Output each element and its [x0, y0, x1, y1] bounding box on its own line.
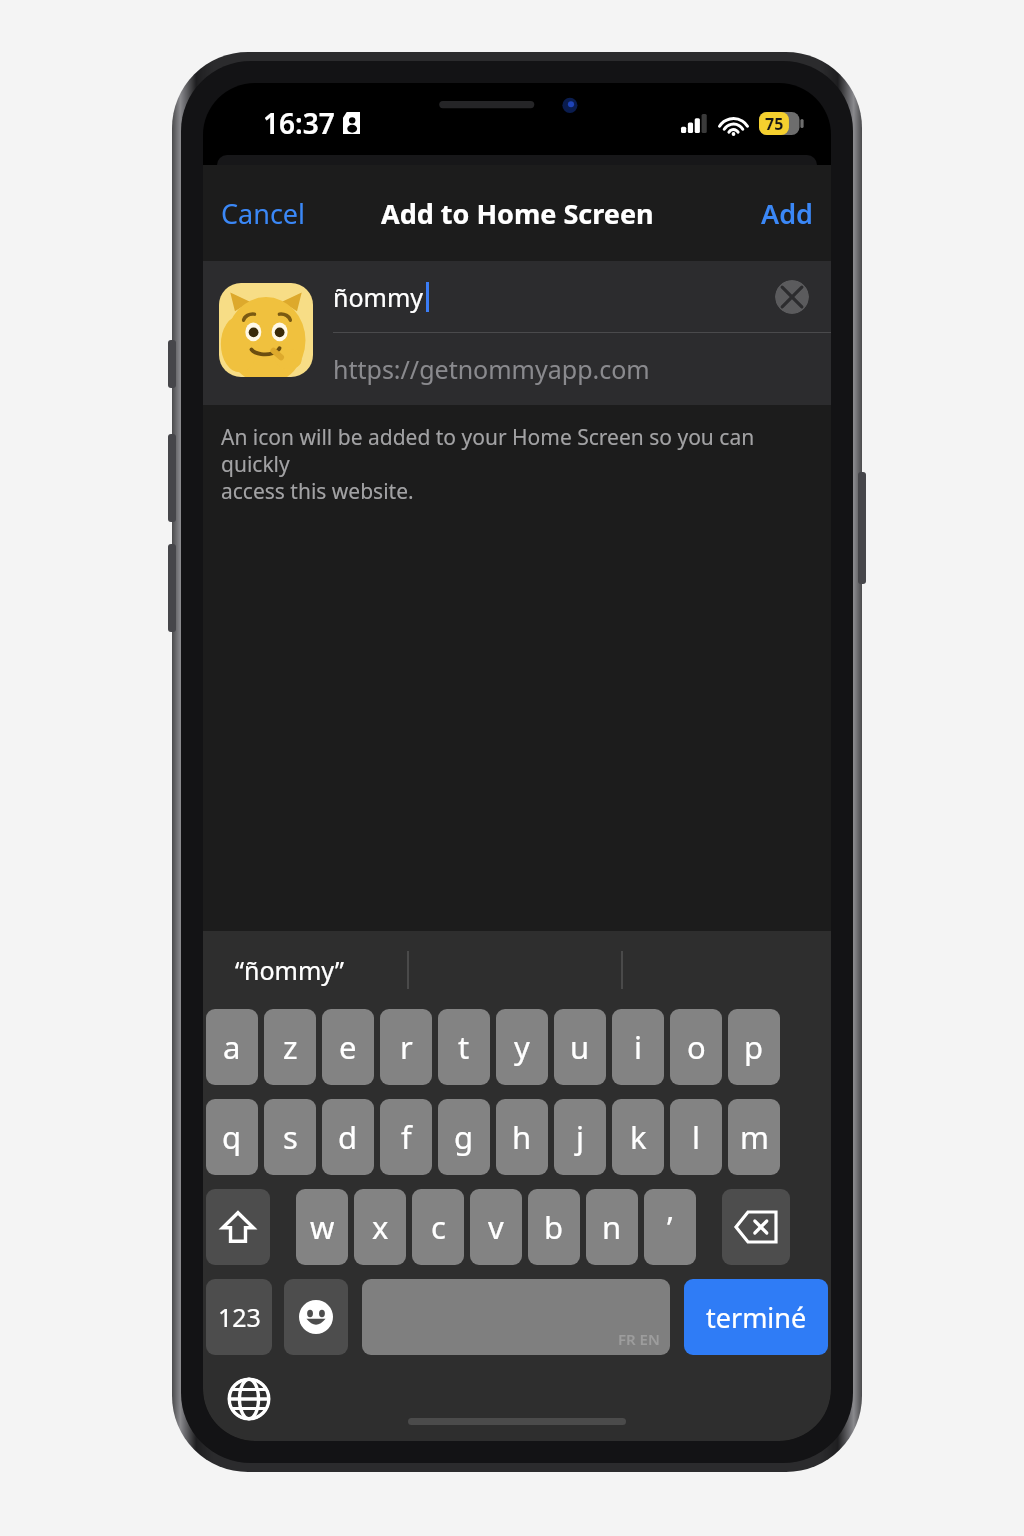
- button[interactable]: n: [586, 1189, 638, 1265]
- staticText: a: [223, 1026, 241, 1068]
- button[interactable]: s: [264, 1099, 316, 1175]
- staticText: 16:37: [263, 104, 335, 142]
- button[interactable]: k: [612, 1099, 664, 1175]
- button[interactable]: e: [322, 1009, 374, 1085]
- button[interactable]: u: [554, 1009, 606, 1085]
- staticText: d: [338, 1116, 358, 1158]
- staticText: i: [634, 1026, 642, 1068]
- button[interactable]: o: [670, 1009, 722, 1085]
- staticText: h: [512, 1116, 532, 1158]
- button[interactable]: i: [612, 1009, 664, 1085]
- button[interactable]: 123: [206, 1279, 272, 1355]
- button[interactable]: x: [354, 1189, 406, 1265]
- staticText: 123: [218, 1300, 261, 1334]
- button[interactable]: z: [264, 1009, 316, 1085]
- button[interactable]: t: [438, 1009, 490, 1085]
- staticText: n: [602, 1206, 622, 1248]
- button[interactable]: Shift: [206, 1189, 270, 1265]
- staticText: Add to Home Screen: [381, 195, 654, 232]
- staticText: e: [339, 1026, 357, 1068]
- button[interactable]: v: [470, 1189, 522, 1265]
- button[interactable]: Space: [362, 1279, 670, 1355]
- staticText: Cancel: [221, 195, 306, 232]
- button[interactable]: d: [322, 1099, 374, 1175]
- button[interactable]: a: [206, 1009, 258, 1085]
- staticText: z: [283, 1026, 298, 1068]
- button[interactable]: Change keyboard language: [227, 1377, 271, 1421]
- staticText: r: [400, 1026, 413, 1068]
- staticText: 75: [765, 113, 784, 135]
- staticText: f: [401, 1116, 412, 1158]
- button[interactable]: Backspace: [722, 1189, 790, 1265]
- staticText: j: [576, 1116, 584, 1158]
- staticText: p: [744, 1026, 764, 1068]
- staticText: c: [431, 1206, 446, 1248]
- staticText: o: [687, 1026, 706, 1068]
- button[interactable]: j: [554, 1099, 606, 1175]
- button[interactable]: “ñommy”: [229, 947, 351, 993]
- staticText: v: [488, 1206, 504, 1248]
- staticText: Add: [761, 195, 813, 232]
- button[interactable]: Cancel: [203, 187, 324, 240]
- staticText: terminé: [706, 1299, 807, 1336]
- staticText: https://getnommyapp.com: [333, 352, 650, 386]
- staticText: b: [544, 1206, 564, 1248]
- button[interactable]: g: [438, 1099, 490, 1175]
- staticText: g: [454, 1116, 474, 1158]
- button[interactable]: h: [496, 1099, 548, 1175]
- button[interactable]: w: [296, 1189, 348, 1265]
- button[interactable]: m: [728, 1099, 780, 1175]
- staticText: w: [310, 1206, 335, 1248]
- staticText: s: [283, 1116, 298, 1158]
- button[interactable]: App icon: [219, 283, 313, 377]
- staticText: q: [222, 1116, 242, 1158]
- staticText: FR EN: [618, 1329, 660, 1349]
- staticText: k: [630, 1116, 647, 1158]
- button[interactable]: f: [380, 1099, 432, 1175]
- staticText: t: [458, 1026, 470, 1068]
- button[interactable]: r: [380, 1009, 432, 1085]
- button[interactable]: q: [206, 1099, 258, 1175]
- button[interactable]: c: [412, 1189, 464, 1265]
- button[interactable]: y: [496, 1009, 548, 1085]
- staticText: “ñommy”: [235, 953, 345, 987]
- button[interactable]: Emoji: [284, 1279, 348, 1355]
- button[interactable]: b: [528, 1189, 580, 1265]
- button[interactable]: Add: [743, 187, 831, 240]
- button[interactable]: terminé: [684, 1279, 828, 1355]
- staticText: l: [692, 1116, 700, 1158]
- button[interactable]: ’: [644, 1189, 696, 1265]
- staticText: ’: [667, 1206, 673, 1248]
- staticText: u: [570, 1026, 590, 1068]
- staticText: x: [372, 1206, 389, 1248]
- staticText: An icon will be added to your Home Scree…: [221, 423, 813, 505]
- staticText: y: [514, 1026, 530, 1068]
- button[interactable]: Clear text: [775, 280, 809, 314]
- button[interactable]: l: [670, 1099, 722, 1175]
- button[interactable]: p: [728, 1009, 780, 1085]
- staticText: ñommy: [333, 280, 424, 314]
- staticText: m: [740, 1116, 769, 1158]
